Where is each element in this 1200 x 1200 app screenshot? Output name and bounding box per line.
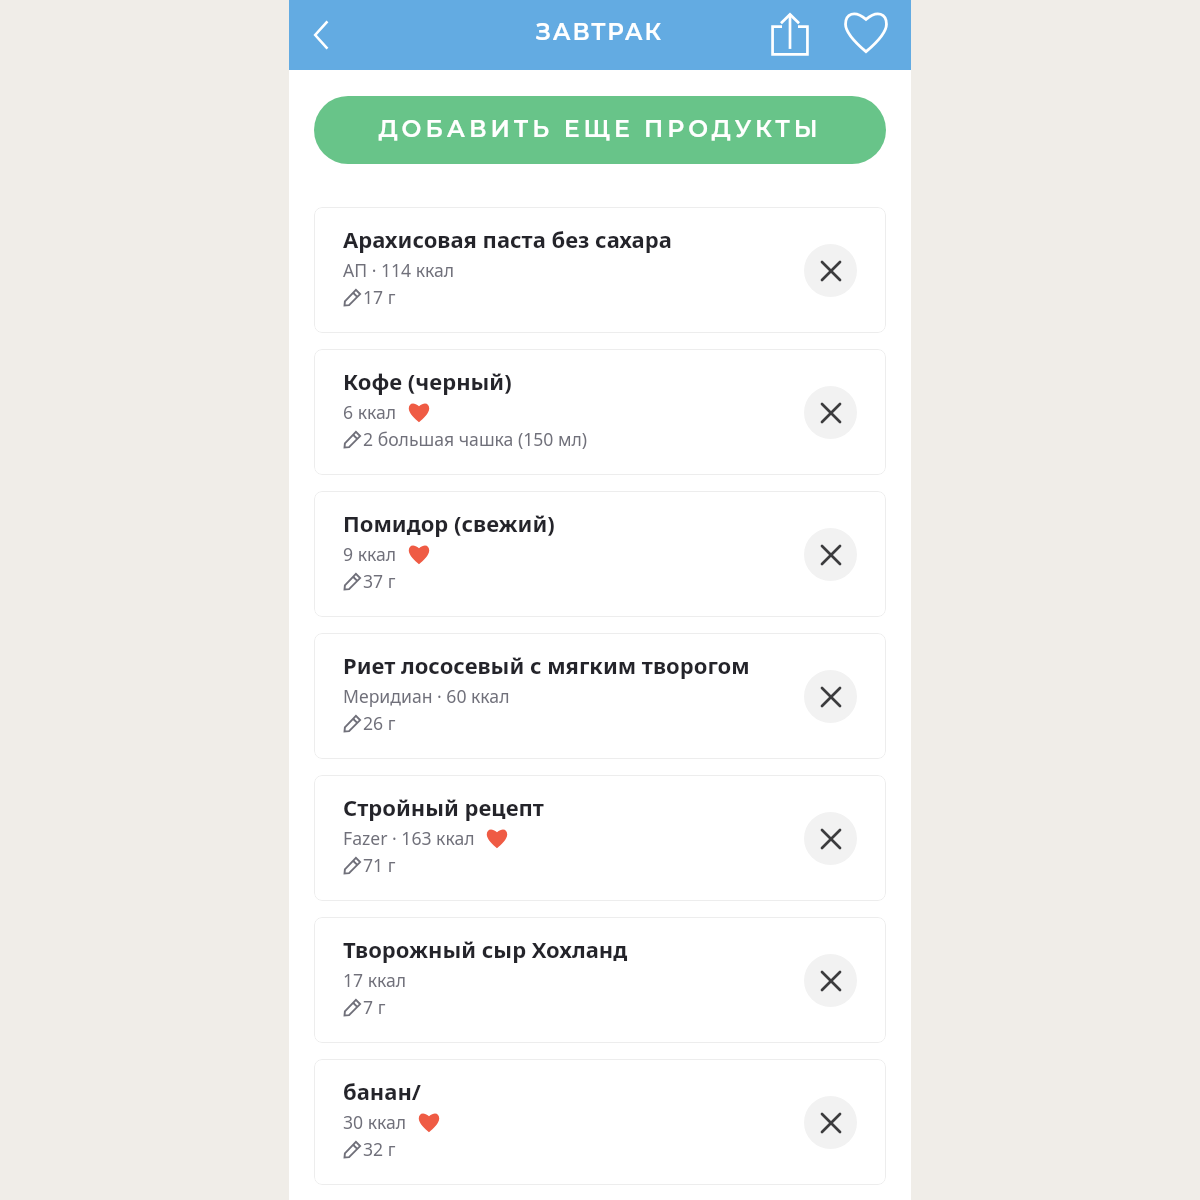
- button[interactable]: Remove: [804, 528, 857, 581]
- button[interactable]: Remove: [804, 244, 857, 297]
- staticText: Меридиан · 60 ккал: [343, 684, 510, 708]
- staticText: Арахисовая паста без сахара: [343, 224, 672, 254]
- button[interactable]: Стройный рецепт: [314, 775, 886, 901]
- staticText: Fazer · 163 ккал: [343, 826, 475, 850]
- button[interactable]: ДОБАВИТЬ ЕЩЕ ПРОДУКТЫ: [314, 96, 886, 164]
- staticText: Помидор (свежий): [343, 508, 555, 538]
- staticText: Риет лососевый с мягким творогом: [343, 650, 750, 680]
- button[interactable]: Remove: [804, 812, 857, 865]
- staticText: 32 г: [363, 1137, 396, 1161]
- button[interactable]: Share: [762, 7, 818, 63]
- button[interactable]: Кофе (черный): [314, 349, 886, 475]
- staticText: Стройный рецепт: [343, 792, 544, 822]
- staticText: Кофе (черный): [343, 366, 512, 396]
- staticText: 9 ккал: [343, 542, 397, 566]
- button[interactable]: Favorite: [838, 7, 894, 63]
- button[interactable]: Remove: [804, 670, 857, 723]
- staticText: 7 г: [363, 995, 386, 1019]
- staticText: 6 ккал: [343, 400, 397, 424]
- button[interactable]: Remove: [804, 954, 857, 1007]
- staticText: 71 г: [363, 853, 396, 877]
- button[interactable]: Remove: [804, 386, 857, 439]
- button[interactable]: Back: [294, 7, 350, 63]
- button[interactable]: Помидор (свежий): [314, 491, 886, 617]
- staticText: Творожный сыр Хохланд: [343, 934, 628, 964]
- staticText: АП · 114 ккал: [343, 258, 455, 282]
- staticText: 2 большая чашка (150 мл): [363, 427, 588, 451]
- button[interactable]: банан/: [314, 1059, 886, 1185]
- staticText: банан/: [343, 1076, 421, 1106]
- staticText: 37 г: [363, 569, 396, 593]
- staticText: 17 г: [363, 285, 396, 309]
- staticText: 30 ккал: [343, 1110, 407, 1134]
- staticText: 26 г: [363, 711, 396, 735]
- button[interactable]: Remove: [804, 1096, 857, 1149]
- staticText: 17 ккал: [343, 968, 407, 992]
- staticText: ЗАВТРАК: [536, 18, 664, 46]
- button[interactable]: Творожный сыр Хохланд: [314, 917, 886, 1043]
- button[interactable]: Риет лососевый с мягким творогом: [314, 633, 886, 759]
- staticText: ДОБАВИТЬ ЕЩЕ ПРОДУКТЫ: [378, 114, 822, 143]
- button[interactable]: Арахисовая паста без сахара: [314, 207, 886, 333]
